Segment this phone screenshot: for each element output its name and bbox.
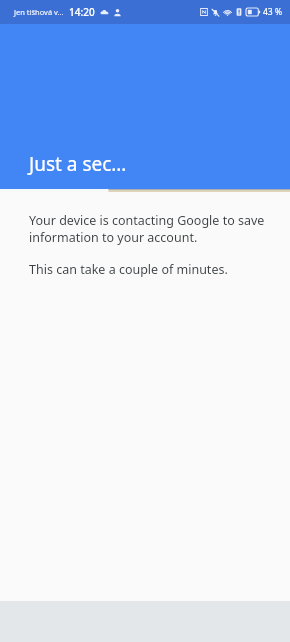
- staticText: Jen tišhová v…: [14, 7, 64, 17]
- staticText: Your device is contacting Google to save…: [29, 212, 268, 246]
- staticText: 14:20: [69, 5, 95, 19]
- staticText: This can take a couple of minutes.: [29, 261, 228, 278]
- staticText: 43 %: [263, 6, 282, 18]
- staticText: Just a sec…: [29, 151, 127, 177]
